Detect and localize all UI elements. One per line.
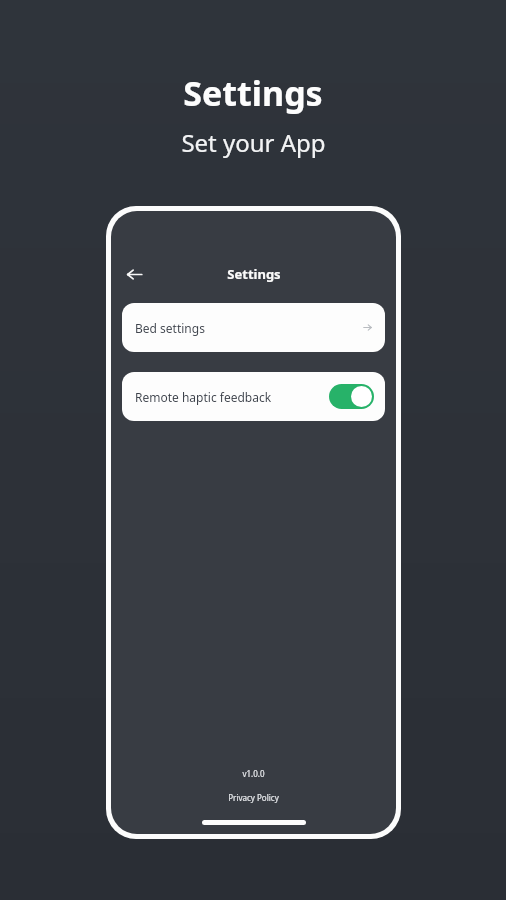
staticText: Bed settings <box>135 320 205 336</box>
button[interactable]: Remote haptic feedback <box>122 372 385 421</box>
staticText: Remote haptic feedback <box>135 389 272 405</box>
staticText: v1.0.0 <box>242 768 265 779</box>
button[interactable]: Bed settings <box>122 303 385 352</box>
button[interactable]: Remote haptic feedback toggle, on <box>329 384 374 409</box>
staticText: Settings <box>183 70 323 116</box>
staticText: Settings <box>227 265 281 283</box>
staticText: Privacy Policy <box>228 792 279 803</box>
button[interactable]: Privacy Policy <box>222 790 285 805</box>
staticText: Set your App <box>181 126 326 159</box>
button[interactable]: Back <box>119 259 149 289</box>
